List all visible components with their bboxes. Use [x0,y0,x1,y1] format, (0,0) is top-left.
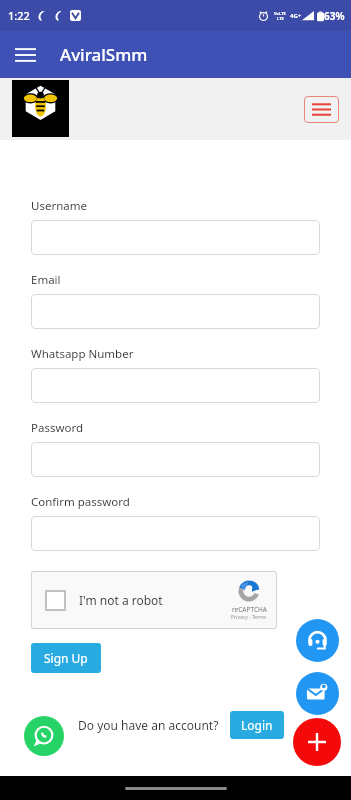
staticText: Login [241,717,273,733]
staticText: Password [31,420,84,436]
button[interactable]: Sign Up [31,643,101,673]
button[interactable]: Contact by email [296,672,339,715]
staticText: Whatsapp Number [31,346,134,362]
button[interactable]: Customer support [296,619,339,662]
staticText: 4G+ [290,12,302,20]
other: I'm not a robot checkbox [45,590,66,611]
button[interactable]: A Viral SMM logo [12,80,69,137]
staticText: 63% [324,9,345,23]
staticText: AviralSmm [60,43,148,66]
button[interactable]: Add [293,718,341,766]
button[interactable]: Whatsapp Number [31,368,320,403]
staticText: Sign Up [44,650,88,666]
staticText: Do you have an account? [78,717,219,733]
staticText: Privacy - Terms [231,614,267,621]
button[interactable]: Confirm password [31,516,320,551]
button[interactable]: I'm not a robot checkbox [31,571,277,629]
staticText: 1:22 [8,8,30,23]
staticText: VoLTE [274,11,286,16]
button[interactable]: Site menu [304,96,339,123]
button[interactable]: Home gesture bar [125,787,227,790]
staticText: LTE [277,16,284,21]
button[interactable]: Login [230,711,284,739]
staticText: Email [31,272,61,288]
button[interactable]: Password [31,442,320,477]
staticText: Confirm password [31,494,130,510]
button[interactable]: Username [31,220,320,255]
button[interactable]: Email [31,294,320,329]
staticText: I'm not a robot [79,592,163,608]
button[interactable]: Chat on WhatsApp [24,716,64,756]
staticText: reCAPTCHA [232,605,267,614]
staticText: Username [31,198,87,214]
button[interactable]: Open navigation menu [10,40,40,70]
